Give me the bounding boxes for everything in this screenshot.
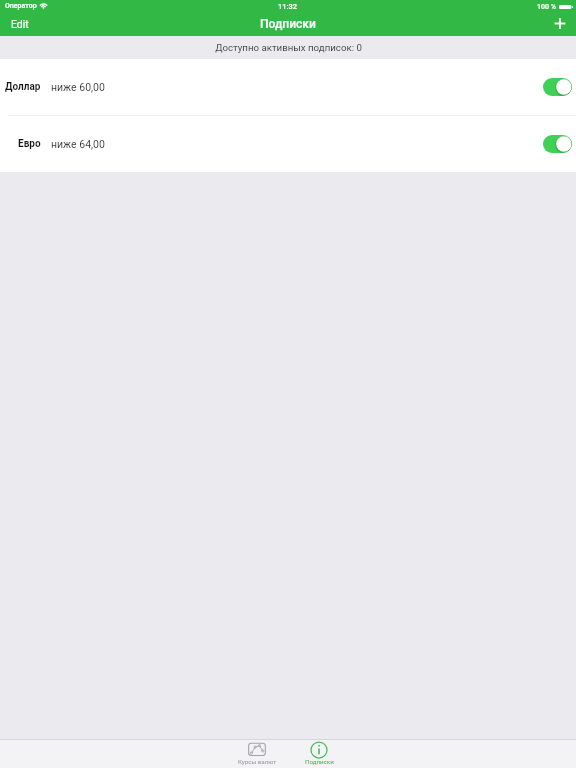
staticText: 100 % (537, 3, 556, 11)
staticText: Доллар (5, 81, 41, 93)
button[interactable]: Toggle subscription (543, 135, 572, 153)
staticText: Edit (11, 18, 29, 30)
button[interactable]: Подписки (288, 740, 350, 768)
staticText: Курсы валют (238, 758, 277, 765)
staticText: Оператор (5, 2, 37, 10)
button[interactable]: Add subscription (549, 13, 571, 35)
staticText: Евро (18, 138, 41, 150)
button[interactable]: Евро (0, 116, 576, 172)
staticText: Подписки (305, 758, 334, 765)
staticText: Доступно активных подписок: 0 (215, 42, 362, 53)
staticText: ниже 60,00 (51, 81, 105, 93)
staticText: Подписки (260, 17, 316, 31)
button[interactable]: Toggle subscription (543, 78, 572, 96)
staticText: 11:32 (278, 2, 298, 11)
button[interactable]: Edit (0, 13, 40, 35)
button[interactable]: Доллар (0, 59, 576, 115)
staticText: ниже 64,00 (51, 138, 105, 150)
button[interactable]: Курсы валют (226, 740, 288, 768)
